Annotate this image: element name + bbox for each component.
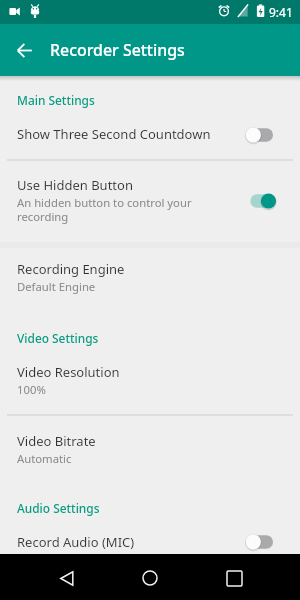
staticText: Default Engine <box>17 279 96 294</box>
staticText: Audio Settings <box>17 500 100 516</box>
staticText: Video Settings <box>17 330 99 346</box>
staticText: Show Three Second Countdown <box>17 125 211 143</box>
button[interactable]: Video Bitrate <box>0 432 300 466</box>
staticText: Video Bitrate <box>17 432 96 450</box>
button[interactable]: Back <box>47 563 87 593</box>
staticText: Record Audio (MIC) <box>17 533 135 551</box>
staticText: An hidden button to control your recordi… <box>17 195 192 224</box>
button[interactable]: Show Three Second Countdown <box>0 125 300 143</box>
button[interactable]: Use Hidden Button <box>0 176 300 224</box>
staticText: Recording Engine <box>17 260 125 278</box>
staticText: 9:41 <box>269 4 293 20</box>
staticText: 100% <box>17 382 46 397</box>
button[interactable]: Home <box>130 563 170 593</box>
staticText: Main Settings <box>17 92 95 108</box>
staticText: Recorder Settings <box>50 39 185 61</box>
button[interactable]: Recent apps <box>214 563 254 593</box>
button[interactable]: Video Resolution <box>0 363 300 397</box>
button[interactable]: Record Audio (MIC) <box>0 533 300 551</box>
button[interactable]: Back <box>6 32 43 69</box>
button[interactable]: Recording Engine <box>0 260 300 294</box>
staticText: Video Resolution <box>17 363 120 381</box>
staticText: Use Hidden Button <box>17 176 133 194</box>
staticText: Automatic <box>17 451 72 466</box>
